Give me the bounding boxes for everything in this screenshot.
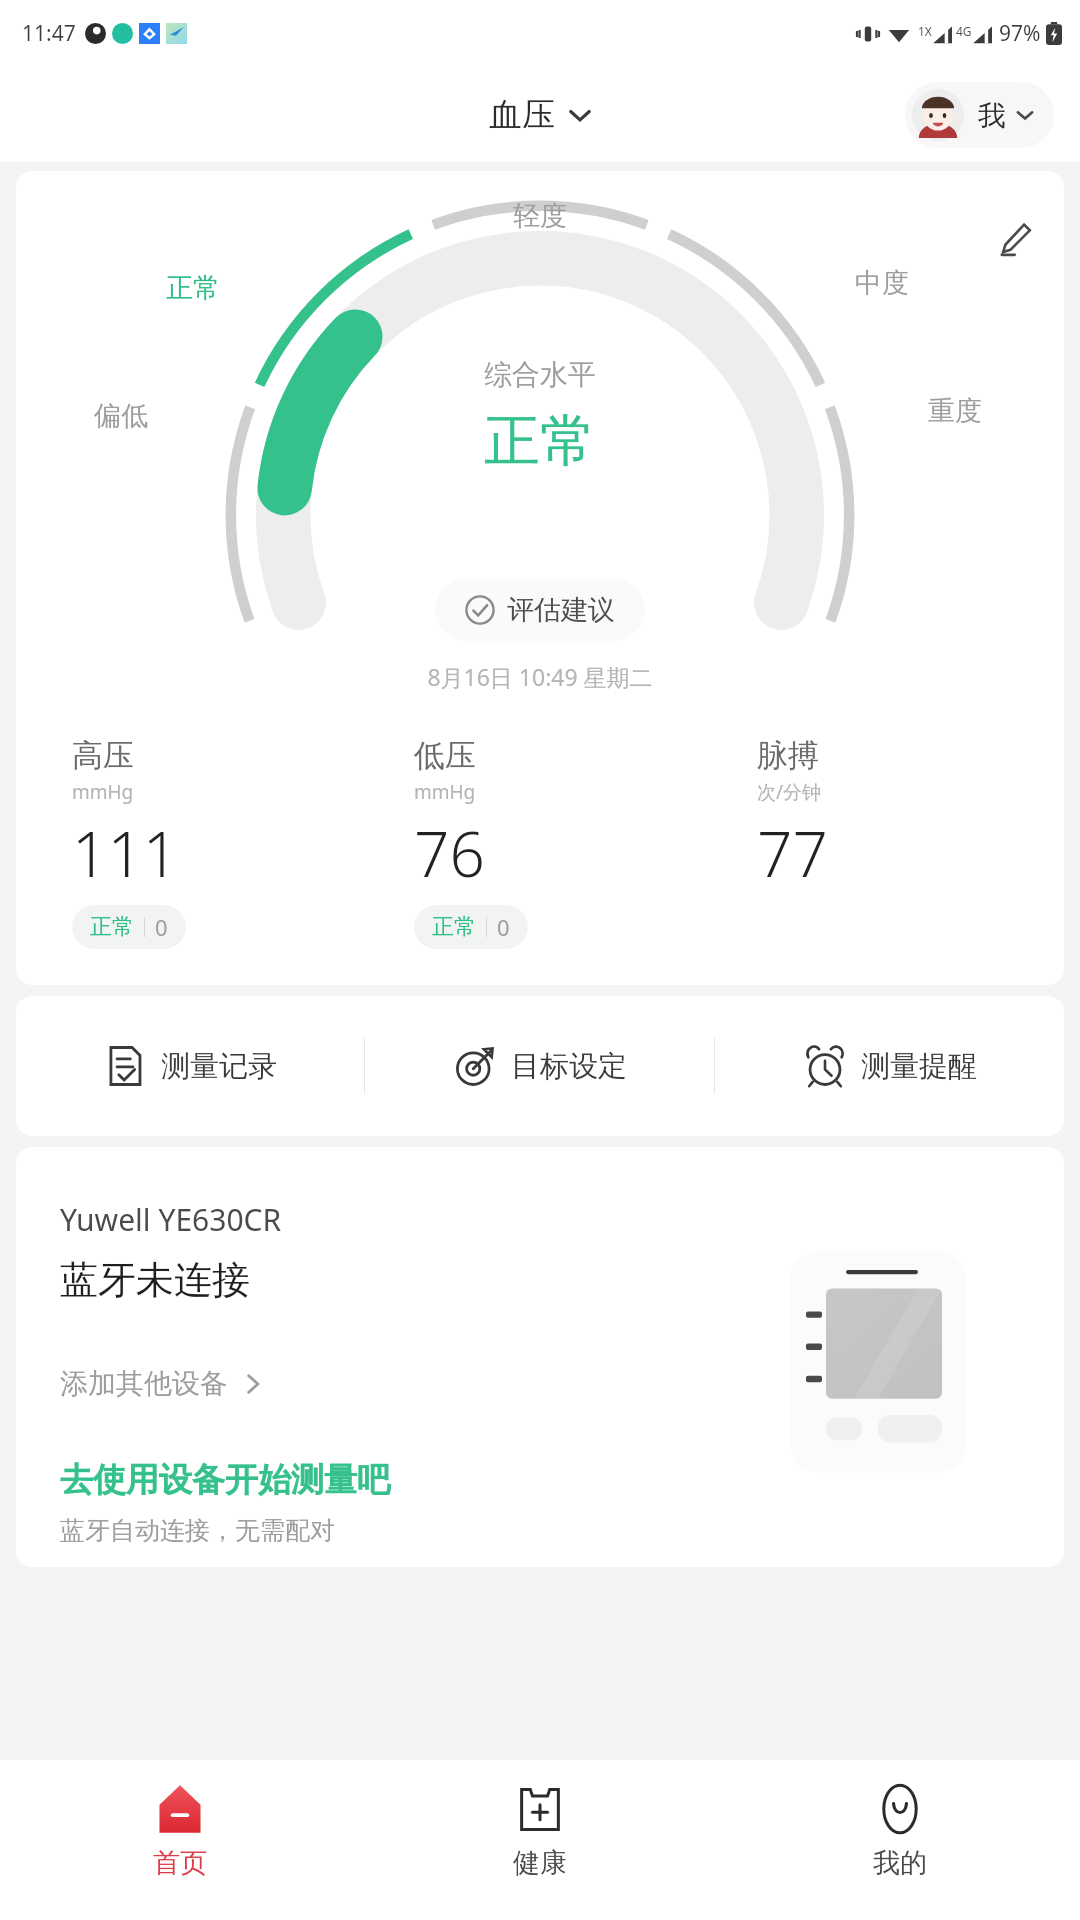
button[interactable]: 高压 — [26, 736, 368, 949]
staticText: 0 — [497, 912, 510, 942]
staticText: 8月16日 10:49 星期二 — [16, 661, 1064, 692]
button[interactable]: 我 — [905, 82, 1054, 148]
button[interactable]: 健康 — [360, 1760, 720, 1920]
staticText: 11:47 — [22, 19, 76, 48]
staticText: 111 — [72, 811, 179, 895]
staticText: 4G — [956, 23, 972, 39]
staticText: 正常 — [166, 271, 220, 305]
button[interactable]: 目标设定 — [365, 996, 714, 1136]
button[interactable]: 编辑 — [990, 215, 1038, 263]
staticText: 评估建议 — [507, 593, 615, 627]
staticText: 低压 — [414, 736, 476, 775]
staticText: 76 — [414, 811, 485, 895]
staticText: 我 — [978, 98, 1006, 133]
staticText: 次/分钟 — [757, 779, 822, 805]
button[interactable]: 添加其他设备 — [60, 1366, 264, 1401]
staticText: 重度 — [928, 394, 982, 428]
staticText: 测量记录 — [161, 1048, 277, 1085]
staticText: 77 — [757, 811, 828, 895]
staticText: 正常 — [90, 913, 134, 941]
staticText: 偏低 — [94, 399, 148, 433]
button[interactable]: 去使用设备开始测量吧 — [60, 1459, 390, 1501]
button[interactable]: 评估建议 — [435, 579, 645, 641]
staticText: 健康 — [513, 1846, 567, 1880]
staticText: 脉搏 — [757, 736, 819, 775]
button[interactable]: 测量记录 — [16, 996, 364, 1136]
staticText: 正常 — [432, 913, 476, 941]
staticText: 目标设定 — [511, 1048, 627, 1085]
staticText: mmHg — [414, 779, 476, 805]
staticText: 97% — [999, 19, 1041, 48]
staticText: 首页 — [153, 1846, 207, 1880]
button[interactable]: 测量提醒 — [715, 996, 1064, 1136]
staticText: 添加其他设备 — [60, 1366, 228, 1401]
staticText: 正常 — [484, 406, 596, 477]
staticText: 我的 — [873, 1846, 927, 1880]
button[interactable]: 血压 — [489, 94, 591, 136]
staticText: Yuwell YE630CR — [60, 1199, 282, 1240]
button[interactable]: 低压 — [368, 736, 711, 949]
staticText: 蓝牙自动连接，无需配对 — [60, 1515, 335, 1546]
staticText: 高压 — [72, 736, 134, 775]
staticText: mmHg — [72, 779, 134, 805]
staticText: 中度 — [855, 266, 909, 300]
button[interactable]: 我的 — [720, 1760, 1080, 1920]
staticText: 0 — [155, 912, 168, 942]
staticText: 1X — [918, 23, 932, 39]
button[interactable]: 脉搏 — [711, 736, 1054, 905]
staticText: 综合水平 — [484, 357, 596, 392]
staticText: 蓝牙未连接 — [60, 1256, 250, 1304]
staticText: 血压 — [489, 94, 555, 136]
staticText: 轻度 — [513, 199, 567, 233]
staticText: 测量提醒 — [861, 1048, 977, 1085]
button[interactable]: 首页 — [0, 1760, 360, 1920]
